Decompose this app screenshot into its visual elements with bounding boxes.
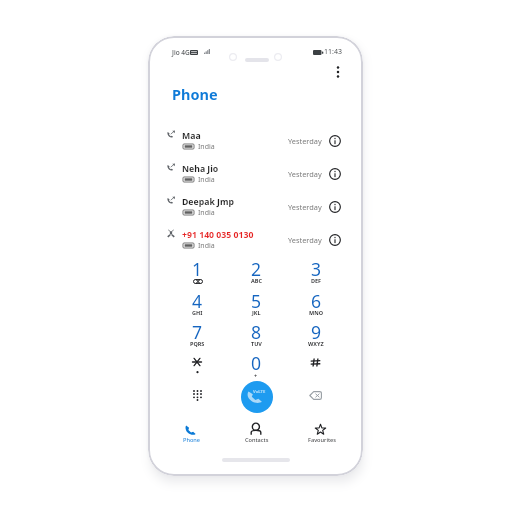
staticText: Jio 4G: [172, 48, 190, 57]
button[interactable]: 2: [236, 257, 276, 287]
staticText: PQRS: [190, 340, 205, 347]
staticText: Maa: [182, 130, 201, 142]
staticText: 6: [311, 289, 322, 313]
button[interactable]: [152, 225, 359, 258]
staticText: India: [198, 208, 215, 218]
button[interactable]: [152, 126, 359, 159]
staticText: 2: [251, 257, 262, 281]
button[interactable]: Phone: [172, 84, 218, 104]
button[interactable]: Call details: [328, 200, 342, 214]
button[interactable]: [298, 419, 344, 446]
staticText: 5: [251, 289, 262, 313]
button[interactable]: 0: [236, 351, 276, 381]
staticText: Phone: [183, 436, 201, 444]
button[interactable]: 3: [296, 257, 336, 287]
button[interactable]: 8: [236, 320, 276, 350]
staticText: +91 140 035 0130: [182, 229, 254, 241]
button[interactable]: 6: [296, 289, 336, 319]
staticText: 9: [311, 320, 322, 344]
staticText: Contacts: [245, 436, 269, 444]
staticText: 1: [192, 257, 203, 281]
button[interactable]: More options: [331, 61, 345, 83]
staticText: Favourites: [308, 436, 336, 444]
staticText: 8: [251, 320, 262, 344]
button[interactable]: Call: [241, 381, 273, 413]
button[interactable]: 7: [177, 320, 217, 350]
staticText: TUV: [251, 340, 262, 347]
staticText: Yesterday: [288, 169, 322, 179]
staticText: India: [198, 142, 215, 152]
staticText: GHI: [192, 309, 203, 316]
button[interactable]: [152, 192, 359, 225]
staticText: WXYZ: [308, 340, 324, 347]
staticText: VoLTE: [253, 389, 266, 395]
button[interactable]: Call details: [328, 167, 342, 181]
button[interactable]: 5: [236, 289, 276, 319]
staticText: Phone: [172, 84, 218, 104]
staticText: Neha Jio: [182, 163, 219, 175]
staticText: 7: [192, 320, 203, 344]
staticText: ABC: [251, 277, 262, 284]
button[interactable]: Keypad: [193, 390, 202, 401]
staticText: India: [198, 175, 215, 185]
button[interactable]: Star: [192, 358, 202, 366]
staticText: 11:43: [324, 47, 342, 57]
staticText: 3: [311, 257, 322, 281]
staticText: Yesterday: [288, 235, 322, 245]
button[interactable]: Call details: [328, 233, 342, 247]
button[interactable]: 1: [177, 257, 217, 287]
button[interactable]: Pound: [310, 358, 321, 367]
button[interactable]: Backspace: [309, 391, 322, 400]
staticText: Deepak Jmp: [182, 196, 234, 208]
button[interactable]: [233, 419, 279, 446]
staticText: +: [254, 372, 258, 379]
button[interactable]: 4: [177, 289, 217, 319]
button[interactable]: [152, 159, 359, 192]
staticText: JKL: [252, 309, 261, 316]
button[interactable]: Call details: [328, 134, 342, 148]
staticText: India: [198, 241, 215, 251]
button[interactable]: 9: [296, 320, 336, 350]
staticText: Yesterday: [288, 202, 322, 212]
button[interactable]: [168, 419, 214, 446]
staticText: 4: [192, 289, 203, 313]
staticText: 0: [251, 351, 262, 375]
staticText: MNO: [309, 309, 324, 316]
staticText: Yesterday: [288, 136, 322, 146]
staticText: DEF: [311, 277, 322, 284]
